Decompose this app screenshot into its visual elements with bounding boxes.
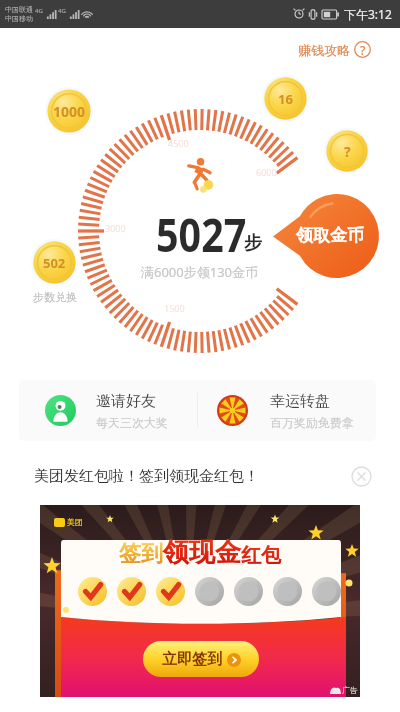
button[interactable]: 幸运转盘 bbox=[198, 380, 376, 441]
staticText: 邀请好友 bbox=[96, 392, 156, 411]
staticText: 1000 bbox=[53, 102, 86, 121]
button[interactable]: Coin ? bbox=[324, 128, 370, 174]
button[interactable]: 邀请好友 bbox=[19, 380, 197, 441]
staticText: 红包 bbox=[241, 543, 281, 568]
staticText: 4G bbox=[58, 7, 66, 15]
staticText: 下午3:12 bbox=[344, 6, 392, 22]
staticText: 领现金 bbox=[163, 536, 241, 569]
staticText: 4500 bbox=[168, 137, 189, 149]
staticText: 16 bbox=[278, 90, 293, 108]
staticText: 5027 bbox=[156, 202, 247, 266]
staticText: 签到 bbox=[119, 540, 163, 568]
button[interactable]: Coin 16 bbox=[262, 75, 309, 122]
staticText: 每天三次大奖 bbox=[96, 415, 168, 430]
staticText: 中国联通 bbox=[5, 5, 33, 14]
button[interactable]: 赚钱攻略 bbox=[294, 38, 375, 61]
button[interactable]: 领取金币 bbox=[273, 194, 379, 278]
button[interactable]: Coin 1000 bbox=[45, 87, 93, 135]
staticText: 立即签到 bbox=[162, 650, 222, 669]
button[interactable]: 美团 bbox=[40, 505, 360, 697]
staticText: 502 bbox=[43, 254, 66, 272]
staticText: 美团发红包啦！签到领现金红包！ bbox=[34, 467, 259, 486]
button[interactable]: Close ad bbox=[351, 466, 372, 487]
staticText: 赚钱攻略 bbox=[298, 42, 350, 58]
staticText: 百万奖励免费拿 bbox=[270, 415, 354, 430]
staticText: 幸运转盘 bbox=[270, 392, 330, 411]
staticText: 领取金币 bbox=[296, 225, 364, 246]
staticText: 美团 bbox=[67, 517, 83, 527]
staticText: 6000 bbox=[256, 166, 277, 178]
staticText: 1500 bbox=[164, 302, 185, 314]
button[interactable]: Coin 502 bbox=[31, 239, 78, 286]
staticText: 步 bbox=[244, 232, 262, 255]
staticText: 4G bbox=[35, 7, 43, 15]
staticText: 步数兑换 bbox=[33, 290, 77, 304]
staticText: 满6000步领130金币 bbox=[141, 263, 259, 281]
staticText: 广告 bbox=[342, 685, 358, 695]
staticText: ? bbox=[344, 142, 351, 161]
staticText: 3000 bbox=[105, 222, 126, 234]
staticText: ? bbox=[360, 42, 366, 58]
staticText: 中国移动 bbox=[5, 14, 33, 23]
button[interactable]: 立即签到 bbox=[143, 641, 259, 677]
